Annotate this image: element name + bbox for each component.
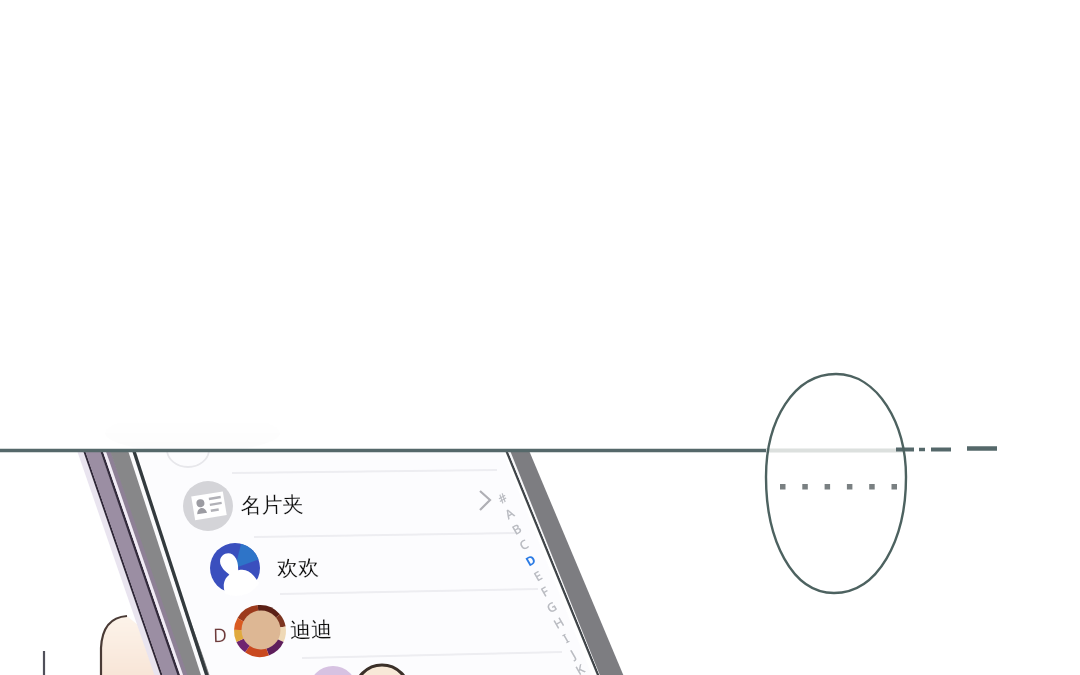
button[interactable]: 欢欢 xyxy=(176,536,524,596)
button[interactable]: Alphabet index xyxy=(498,486,528,666)
button[interactable]: 名片夹 xyxy=(152,474,500,536)
button[interactable]: 迪迪 xyxy=(200,596,548,658)
button[interactable]: Open business cards xyxy=(478,486,502,516)
button[interactable]: Speech balloon xyxy=(766,374,908,594)
